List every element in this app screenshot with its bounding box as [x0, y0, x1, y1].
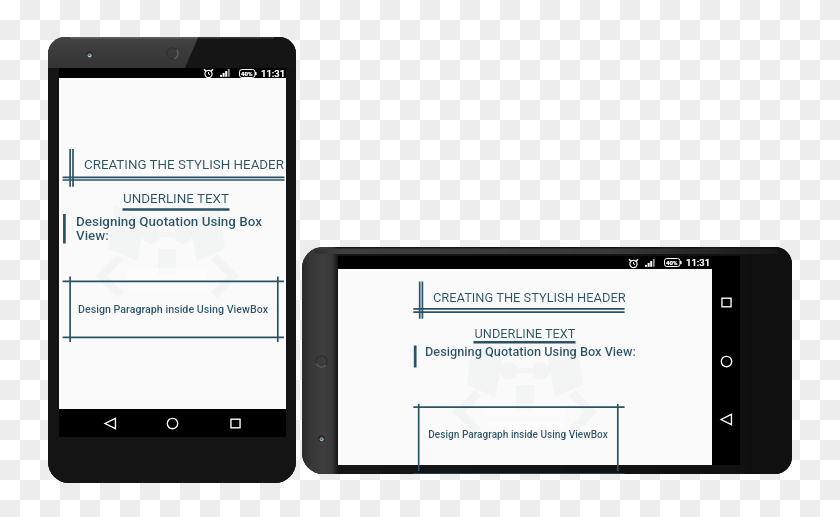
staticText: Design Paragraph inside Using ViewBox [408, 429, 628, 441]
button[interactable]: Recents [717, 293, 735, 311]
staticText: UNDERLINE TEXT [96, 191, 256, 207]
staticText: Design Paragraph inside Using ViewBox [63, 303, 283, 316]
staticText: UNDERLINE TEXT [445, 326, 605, 341]
staticText: 40% [666, 259, 678, 266]
staticText: CREATING THE STYLISH HEADER [433, 290, 626, 305]
button[interactable]: Home [163, 414, 181, 432]
staticText: Designing Quotation Using Box View: [425, 344, 685, 359]
button[interactable]: Back [101, 414, 119, 432]
button[interactable]: Recents [226, 414, 244, 432]
staticText: 11:31 [261, 68, 286, 78]
button[interactable]: Home [717, 352, 735, 370]
staticText: CREATING THE STYLISH HEADER [84, 157, 284, 173]
staticText: 40% [241, 70, 253, 77]
staticText: 11:31 [686, 257, 711, 268]
staticText: Designing Quotation Using Box View: [76, 214, 272, 243]
button[interactable]: Back [717, 410, 735, 428]
